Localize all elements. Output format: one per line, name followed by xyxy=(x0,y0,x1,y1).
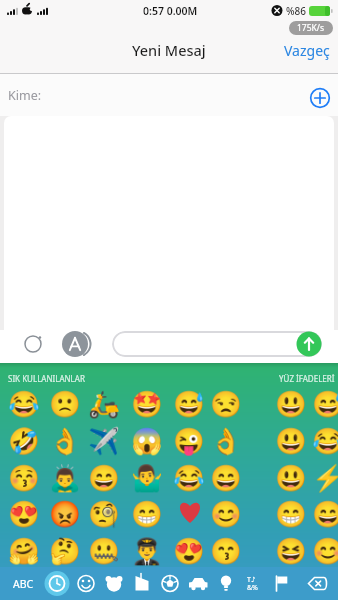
staticText: 👌 xyxy=(49,426,81,456)
staticText: 😁 xyxy=(131,499,163,529)
staticText: 🤷‍♂️ xyxy=(131,463,163,493)
staticText: 👌 xyxy=(210,426,242,456)
staticText: 😍 xyxy=(8,499,40,529)
staticText: 😁 xyxy=(275,499,307,529)
staticText: 😙 xyxy=(210,536,242,566)
staticText: 🛵 xyxy=(88,389,120,419)
staticText: 😜 xyxy=(173,426,205,456)
staticText: 😱 xyxy=(131,426,163,456)
staticText: 🤣 xyxy=(8,426,40,456)
staticText: 😂 xyxy=(173,463,205,493)
staticText: 0:57 0.00M xyxy=(143,4,198,18)
staticText: 🙇‍♂️ xyxy=(49,463,81,493)
staticText: 😄 xyxy=(88,463,120,493)
staticText: ✈️ xyxy=(88,426,120,456)
staticText: Kime: xyxy=(8,87,42,104)
staticText: 😒 xyxy=(210,389,242,419)
staticText: 175K/s xyxy=(297,22,325,34)
staticText: 👨‍✈️ xyxy=(131,536,163,566)
staticText: 😡 xyxy=(49,499,81,529)
staticText: %86 xyxy=(286,4,306,18)
staticText: 😃 xyxy=(275,463,307,493)
staticText: 😊 xyxy=(210,499,242,529)
staticText: 🤗 xyxy=(8,536,40,566)
staticText: 😃 xyxy=(275,389,307,419)
staticText: Yeni Mesaj xyxy=(132,40,206,60)
staticText: 🤔 xyxy=(49,536,81,566)
staticText: 😅 xyxy=(173,389,205,419)
staticText: 😃 xyxy=(275,426,307,456)
staticText: 😅 xyxy=(312,389,338,419)
staticText: 😄 xyxy=(210,463,242,493)
staticText: 🙁 xyxy=(49,389,81,419)
staticText: ABC xyxy=(13,577,34,591)
staticText: 🧐 xyxy=(88,499,120,529)
staticText: 😂 xyxy=(312,426,338,456)
staticText: YÜZ İFADELERİ xyxy=(279,373,335,384)
staticText: T♪ &% xyxy=(247,575,258,592)
staticText: ⚡ xyxy=(312,463,338,493)
staticText: 🤩 xyxy=(131,389,163,419)
staticText: 😊 xyxy=(312,536,338,566)
staticText: 😍 xyxy=(173,536,205,566)
staticText: Vazgeç xyxy=(284,41,330,60)
staticText: SIK KULLANILANLAR xyxy=(8,373,85,384)
staticText: 😚 xyxy=(8,463,40,493)
staticText: 😆 xyxy=(275,536,307,566)
staticText: 😄 xyxy=(312,499,338,529)
staticText: 😂 xyxy=(8,389,40,419)
staticText: 🤐 xyxy=(88,536,120,566)
